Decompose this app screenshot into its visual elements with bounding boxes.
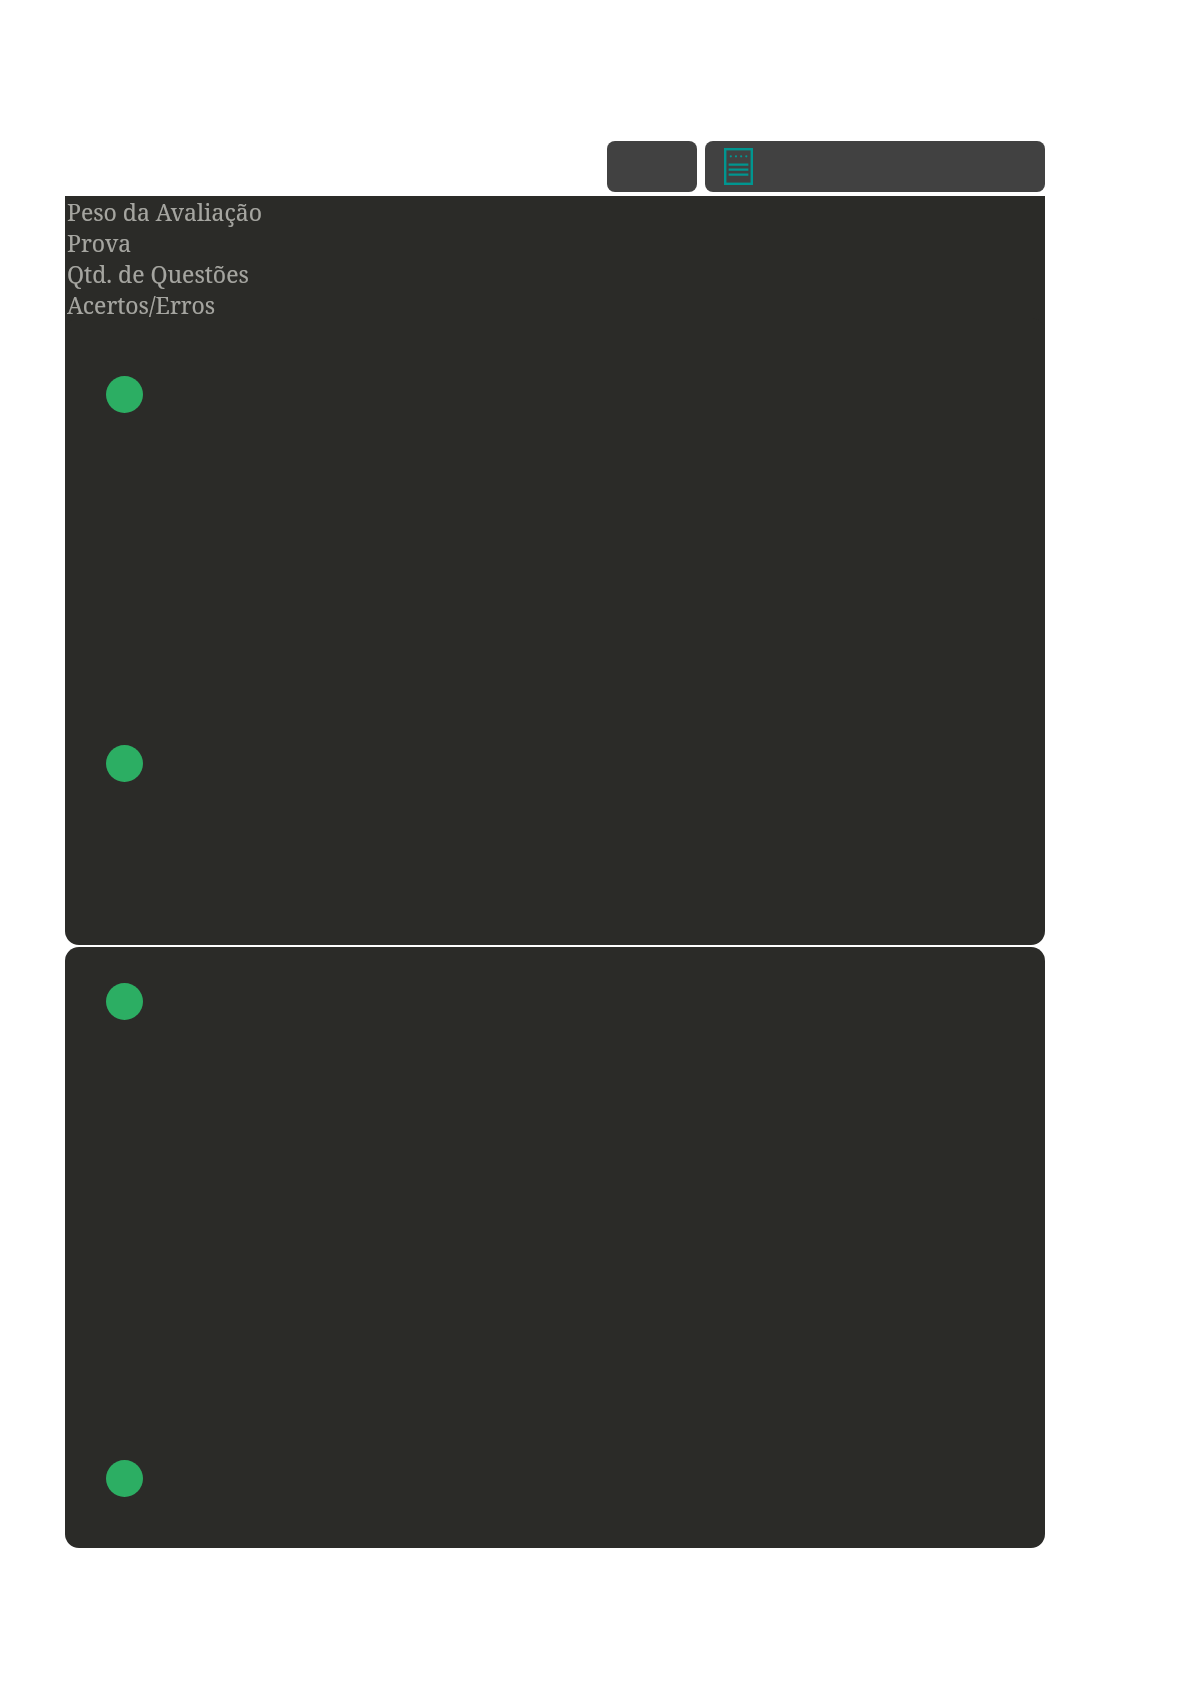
button[interactable]: Status indicator [106, 1460, 143, 1497]
button[interactable]: Tab [607, 141, 697, 192]
button[interactable]: Status indicator [106, 983, 143, 1020]
staticText: Prova [67, 227, 132, 258]
staticText: Acertos/Erros [67, 289, 216, 320]
button[interactable]: Status indicator [65, 318, 1045, 945]
button[interactable]: Status indicator [65, 947, 1045, 1548]
button[interactable]: Status indicator [106, 376, 143, 413]
staticText: Peso da Avaliação [67, 196, 262, 227]
button[interactable]: Avaliações [705, 141, 1045, 192]
staticText: Qtd. de Questões [67, 258, 249, 289]
button[interactable]: Status indicator [106, 745, 143, 782]
